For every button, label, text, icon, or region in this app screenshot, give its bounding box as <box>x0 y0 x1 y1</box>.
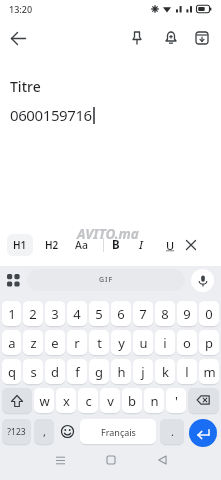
staticText: h <box>117 363 126 381</box>
button[interactable]: i <box>155 330 175 355</box>
button[interactable]: 3 <box>45 301 65 326</box>
staticText: 3 <box>51 305 59 323</box>
button[interactable] <box>7 274 20 287</box>
button[interactable]: o <box>177 330 197 355</box>
staticText: 13:20 <box>9 3 33 15</box>
staticText: m <box>203 363 216 381</box>
staticText: 8 <box>161 305 169 323</box>
staticText: g <box>95 363 103 381</box>
button[interactable] <box>188 388 219 413</box>
button[interactable]: q <box>2 359 21 384</box>
button[interactable] <box>188 24 216 52</box>
button[interactable]: a <box>2 330 21 355</box>
button[interactable]: ' <box>166 388 186 413</box>
staticText: B <box>112 237 120 253</box>
button[interactable]: v <box>100 388 120 413</box>
button[interactable]: 1 <box>2 301 21 326</box>
staticText: o <box>183 334 191 352</box>
button[interactable]: ?123 <box>2 419 31 444</box>
staticText: 4 <box>73 305 81 323</box>
staticText: z <box>30 334 37 352</box>
staticText: q <box>8 363 16 381</box>
staticText: f <box>75 363 80 381</box>
button[interactable]: Français <box>80 419 156 444</box>
button[interactable]: 4 <box>67 301 87 326</box>
button[interactable]: H2 <box>43 236 61 254</box>
button[interactable]: 2 <box>23 301 43 326</box>
button[interactable]: B <box>110 235 122 255</box>
staticText: x <box>63 392 70 410</box>
button[interactable]: t <box>89 330 109 355</box>
staticText: 5 <box>95 305 103 323</box>
staticText: u <box>139 334 148 352</box>
button[interactable]: 6 <box>111 301 131 326</box>
button[interactable]: r <box>67 330 87 355</box>
button[interactable]: f <box>67 359 87 384</box>
staticText: H2 <box>45 238 59 252</box>
staticText: 7 <box>139 305 147 323</box>
staticText: e <box>51 334 59 352</box>
button[interactable] <box>189 419 217 447</box>
staticText: GIF <box>99 275 114 285</box>
button[interactable]: 7 <box>133 301 153 326</box>
button[interactable]: b <box>122 388 142 413</box>
staticText: r <box>74 334 80 352</box>
button[interactable]: 9 <box>177 301 197 326</box>
button[interactable]: Aa <box>73 236 90 254</box>
staticText: i <box>163 334 167 352</box>
button[interactable]: x <box>56 388 76 413</box>
staticText: AVITO.ma <box>77 225 139 243</box>
staticText: a <box>8 334 16 352</box>
button[interactable]: u <box>133 330 153 355</box>
staticText: . <box>171 424 174 439</box>
staticText: w <box>39 392 50 410</box>
button[interactable] <box>184 238 198 252</box>
button[interactable]: 8 <box>155 301 175 326</box>
button[interactable] <box>2 388 32 413</box>
staticText: 0600159716 <box>10 105 92 125</box>
button[interactable] <box>148 450 176 470</box>
button[interactable]: s <box>23 359 43 384</box>
button[interactable]: c <box>78 388 98 413</box>
button[interactable]: 5 <box>89 301 109 326</box>
button[interactable]: l <box>177 359 197 384</box>
button[interactable] <box>46 450 74 470</box>
button[interactable]: I <box>137 235 145 255</box>
button[interactable]: k <box>155 359 175 384</box>
staticText: 2 <box>29 305 37 323</box>
staticText: Titre <box>10 77 41 96</box>
staticText: 1 <box>8 305 16 323</box>
staticText: v <box>107 392 114 410</box>
staticText: 0 <box>205 305 213 323</box>
staticText: t <box>97 334 102 352</box>
button[interactable]: H1 <box>7 234 33 256</box>
button[interactable] <box>4 24 32 52</box>
button[interactable]: GIF <box>27 269 185 291</box>
button[interactable]: U <box>164 236 177 255</box>
button[interactable]: , <box>34 419 54 444</box>
button[interactable]: j <box>133 359 153 384</box>
button[interactable]: y <box>111 330 131 355</box>
button[interactable] <box>57 419 77 444</box>
button[interactable]: m <box>199 359 219 384</box>
staticText: I <box>139 237 143 253</box>
button[interactable]: 0 <box>199 301 219 326</box>
button[interactable]: g <box>89 359 109 384</box>
button[interactable] <box>123 24 151 52</box>
staticText: Français <box>101 426 136 438</box>
button[interactable] <box>97 450 125 470</box>
button[interactable] <box>191 269 214 292</box>
button[interactable] <box>157 24 185 52</box>
button[interactable]: z <box>23 330 43 355</box>
button[interactable]: d <box>45 359 65 384</box>
button[interactable]: p <box>199 330 219 355</box>
button[interactable]: h <box>111 359 131 384</box>
button[interactable]: e <box>45 330 65 355</box>
staticText: l <box>185 363 189 381</box>
button[interactable]: w <box>34 388 54 413</box>
staticText: p <box>205 334 213 352</box>
staticText: j <box>141 363 145 381</box>
button[interactable]: n <box>144 388 164 413</box>
staticText: c <box>85 392 92 410</box>
button[interactable]: . <box>160 419 184 444</box>
